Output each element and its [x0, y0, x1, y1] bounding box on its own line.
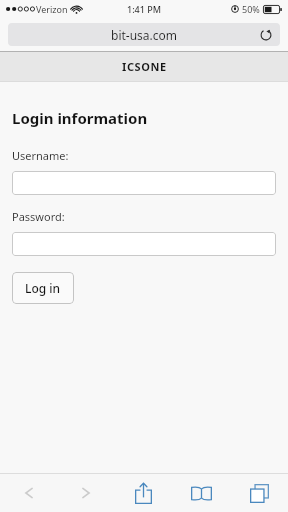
button[interactable]: [12, 232, 276, 256]
button[interactable]: Tabs: [230, 474, 288, 512]
staticText: bit-usa.com: [111, 27, 178, 43]
button[interactable]: Bookmarks: [172, 474, 230, 512]
staticText: 1:41 PM: [127, 3, 161, 15]
staticText: 50%: [242, 3, 260, 15]
button[interactable]: bit-usa.com: [8, 23, 280, 46]
staticText: Login information: [12, 108, 148, 128]
button[interactable]: Forward: [57, 474, 114, 512]
button[interactable]: Share: [114, 474, 172, 512]
staticText: ICSONE: [122, 59, 167, 74]
staticText: Verizon: [36, 3, 68, 15]
staticText: Password:: [12, 209, 65, 224]
button[interactable]: [12, 171, 276, 195]
button[interactable]: Log in: [12, 272, 74, 304]
button[interactable]: Back: [0, 474, 57, 512]
staticText: Log in: [25, 280, 61, 296]
button[interactable]: Reload: [258, 27, 274, 43]
staticText: Username:: [12, 148, 69, 163]
